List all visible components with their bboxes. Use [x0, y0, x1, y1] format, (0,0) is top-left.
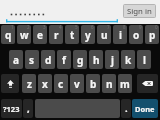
button[interactable]: x — [38, 74, 52, 93]
staticText: j — [111, 53, 114, 67]
button[interactable]: e — [33, 25, 47, 44]
staticText: r — [54, 28, 59, 42]
staticText: 9 — [139, 25, 142, 30]
staticText: Sign in — [127, 6, 152, 17]
button[interactable]: Done — [132, 99, 158, 118]
button[interactable]: a — [9, 50, 23, 69]
staticText: z — [27, 77, 32, 91]
button[interactable]: u — [97, 25, 111, 44]
staticText: a — [13, 53, 19, 67]
staticText: l — [143, 53, 146, 67]
button[interactable]: v — [70, 74, 84, 93]
staticText: t — [70, 28, 75, 42]
staticText: , — [27, 102, 30, 115]
staticText: x — [42, 77, 48, 91]
button[interactable]: o — [129, 25, 143, 44]
staticText: q — [5, 28, 12, 42]
staticText: m — [120, 77, 130, 91]
staticText: 5 — [75, 25, 78, 30]
staticText: 8 — [123, 25, 126, 30]
staticText: 0 — [155, 25, 158, 30]
button[interactable]: n — [102, 74, 116, 93]
staticText: i — [119, 28, 122, 42]
staticText: n — [106, 77, 113, 91]
button[interactable]: w — [17, 25, 31, 44]
button[interactable]: h — [89, 50, 103, 69]
button[interactable]: c — [54, 74, 68, 93]
button[interactable]: l — [137, 50, 151, 69]
button[interactable]: s — [25, 50, 39, 69]
staticText: b — [90, 77, 97, 91]
button[interactable]: ?123 — [1, 99, 22, 118]
staticText: h — [93, 53, 100, 67]
staticText: ?123 — [3, 104, 20, 114]
button[interactable]: d — [41, 50, 55, 69]
button[interactable]: b — [86, 74, 100, 93]
staticText: f — [62, 53, 66, 67]
staticText: e — [37, 28, 43, 42]
button[interactable]: k — [121, 50, 135, 69]
staticText: v — [74, 77, 80, 91]
button[interactable]: f — [57, 50, 71, 69]
staticText: 6 — [91, 25, 94, 30]
button[interactable]: . — [121, 99, 131, 118]
staticText: 2 — [27, 25, 30, 30]
button[interactable]: q — [1, 25, 15, 44]
staticText: g — [77, 53, 84, 67]
button[interactable]: j — [105, 50, 119, 69]
staticText: 7 — [107, 25, 110, 30]
button[interactable]: i — [113, 25, 127, 44]
staticText: p — [149, 28, 156, 42]
staticText: 3 — [43, 25, 46, 30]
staticText: w — [20, 28, 29, 42]
staticText: Done — [135, 104, 155, 114]
staticText: o — [133, 28, 140, 42]
staticText: k — [125, 53, 132, 67]
button[interactable]: , — [23, 99, 33, 118]
button[interactable]: t — [65, 25, 79, 44]
button[interactable]: z — [22, 74, 36, 93]
button[interactable]: Sign in — [123, 4, 156, 18]
staticText: 1 — [11, 25, 14, 30]
staticText: . — [125, 102, 128, 115]
button[interactable]: p — [145, 25, 159, 44]
staticText: d — [45, 53, 52, 67]
button[interactable]: r — [49, 25, 63, 44]
button[interactable]: y — [81, 25, 95, 44]
button[interactable]: Shift — [1, 74, 19, 93]
button[interactable]: Backspace — [137, 74, 158, 93]
button[interactable]: g — [73, 50, 87, 69]
staticText: c — [58, 77, 64, 91]
staticText: y — [85, 28, 91, 42]
staticText: 4 — [59, 25, 62, 30]
button[interactable]: m — [118, 74, 132, 93]
staticText: u — [101, 28, 108, 42]
staticText: s — [29, 53, 35, 67]
